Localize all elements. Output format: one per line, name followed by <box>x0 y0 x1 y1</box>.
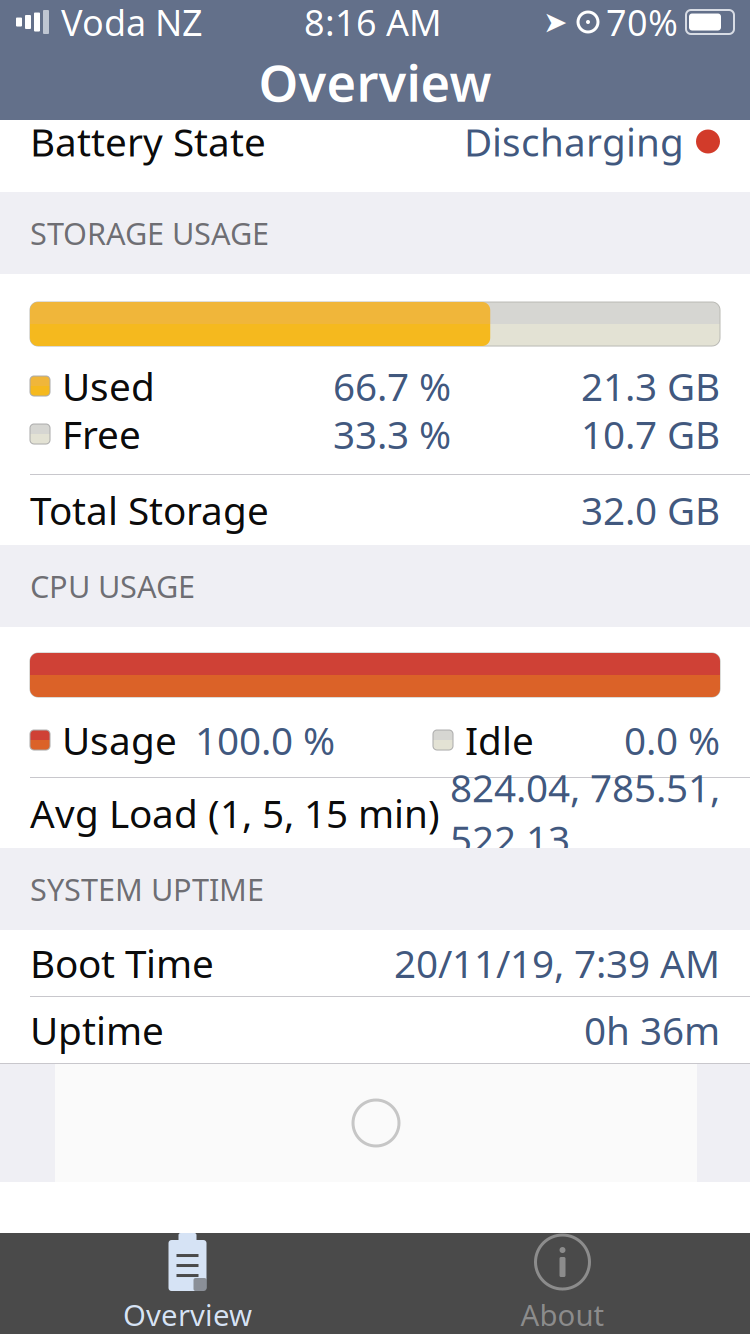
staticText: 21.3 GB <box>581 360 720 412</box>
staticText: 33.3 % <box>333 408 451 460</box>
staticText: Usage <box>62 714 177 766</box>
staticText: Free <box>62 408 141 460</box>
button[interactable]: Overview <box>0 1233 375 1334</box>
staticText: 0.0 % <box>624 714 720 766</box>
staticText: 0h 36m <box>584 1004 720 1056</box>
staticText: 100.0 % <box>195 714 335 766</box>
staticText: About <box>520 1295 604 1334</box>
staticText: 10.7 GB <box>581 408 720 460</box>
staticText: Battery State <box>30 116 266 167</box>
staticText: Voda NZ <box>61 0 203 46</box>
staticText: ➤ <box>543 5 568 39</box>
staticText: Overview <box>123 1295 252 1334</box>
staticText: Used <box>62 360 155 412</box>
staticText: 8:16 AM <box>304 0 442 46</box>
staticText: STORAGE USAGE <box>30 213 269 253</box>
staticText: CPU USAGE <box>30 566 195 606</box>
staticText: 20/11/19, 7:39 AM <box>394 937 720 989</box>
staticText: Avg Load (1, 5, 15 min) <box>30 787 440 839</box>
staticText: 824.04, 785.51, 522.13 <box>450 762 720 864</box>
staticText: Overview <box>258 48 491 116</box>
staticText: 70% <box>606 0 678 46</box>
staticText: 66.7 % <box>333 360 451 412</box>
staticText: SYSTEM UPTIME <box>30 869 264 909</box>
button[interactable]: About <box>375 1233 750 1334</box>
staticText: Total Storage <box>30 484 269 536</box>
staticText: 32.0 GB <box>581 484 720 536</box>
staticText: Boot Time <box>30 937 214 989</box>
staticText: Discharging <box>464 116 684 167</box>
staticText: Uptime <box>30 1004 164 1056</box>
staticText: Idle <box>465 714 534 766</box>
